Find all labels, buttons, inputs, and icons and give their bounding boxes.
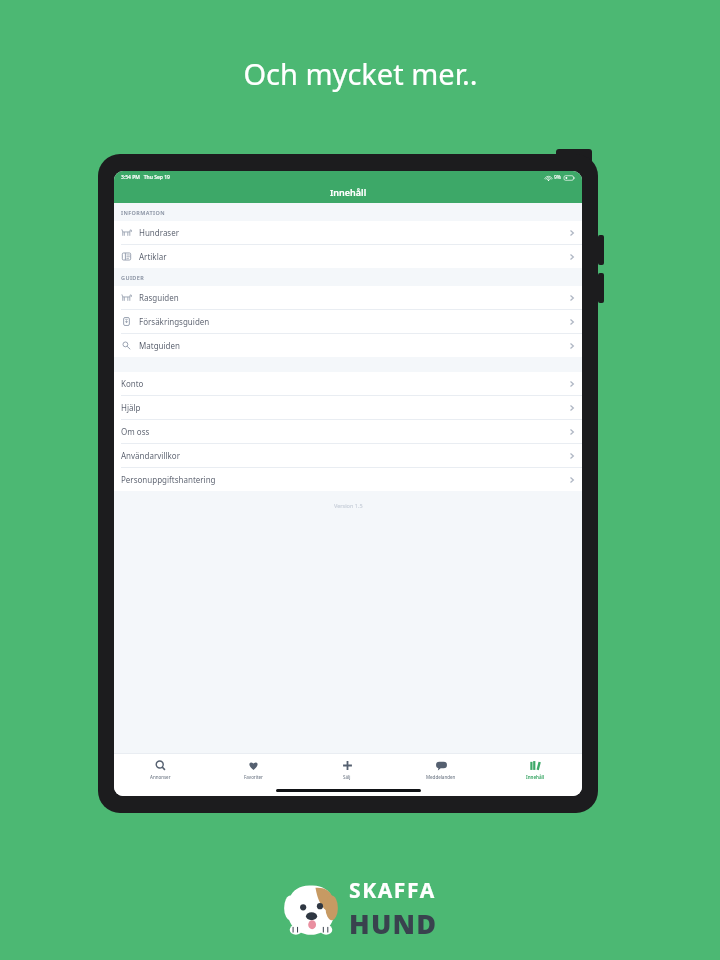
staticText: Konto [121,378,144,389]
staticText: Innehåll [526,774,545,780]
button[interactable]: Personuppgiftshantering [114,468,582,491]
staticText: Personuppgiftshantering [121,474,216,485]
button[interactable]: Favoriter [207,759,300,796]
button[interactable]: Artiklar [114,245,582,268]
button[interactable]: Matguiden [114,334,582,357]
button[interactable]: Försäkringsguiden [114,310,582,333]
staticText: 3:54 PM Thu Sep 19 [121,174,170,181]
staticText: SKAFFA [349,876,436,905]
staticText: Hjälp [121,402,141,413]
staticText: GUIDER [121,274,145,281]
staticText: Version 1.5 [334,502,363,509]
button[interactable]: Meddelanden [394,759,488,796]
staticText: HUND [349,905,438,942]
staticText: Sälj [343,774,351,780]
staticText: Och mycket mer.. [243,54,478,93]
staticText: Om oss [121,426,150,437]
button[interactable]: Rasguiden [114,286,582,309]
button[interactable]: Hundraser [114,221,582,244]
staticText: Favoriter [244,774,263,780]
staticText: 9% [554,174,562,181]
staticText: Försäkringsguiden [139,316,210,327]
button[interactable]: Konto [114,372,582,395]
button[interactable]: Hjälp [114,396,582,419]
staticText: Meddelanden [426,774,456,780]
button[interactable]: Användarvillkor [114,444,582,467]
button[interactable]: Innehåll [488,759,582,796]
staticText: Användarvillkor [121,450,180,461]
staticText: Rasguiden [139,292,179,303]
button[interactable]: Om oss [114,420,582,443]
staticText: Matguiden [139,340,180,351]
staticText: Artiklar [139,251,167,262]
staticText: Annonser [150,774,171,780]
staticText: INFORMATION [121,209,165,216]
staticText: Hundraser [139,227,180,238]
button[interactable]: Sälj [300,759,394,796]
button[interactable]: Annonser [114,759,207,796]
staticText: Innehåll [330,186,367,198]
